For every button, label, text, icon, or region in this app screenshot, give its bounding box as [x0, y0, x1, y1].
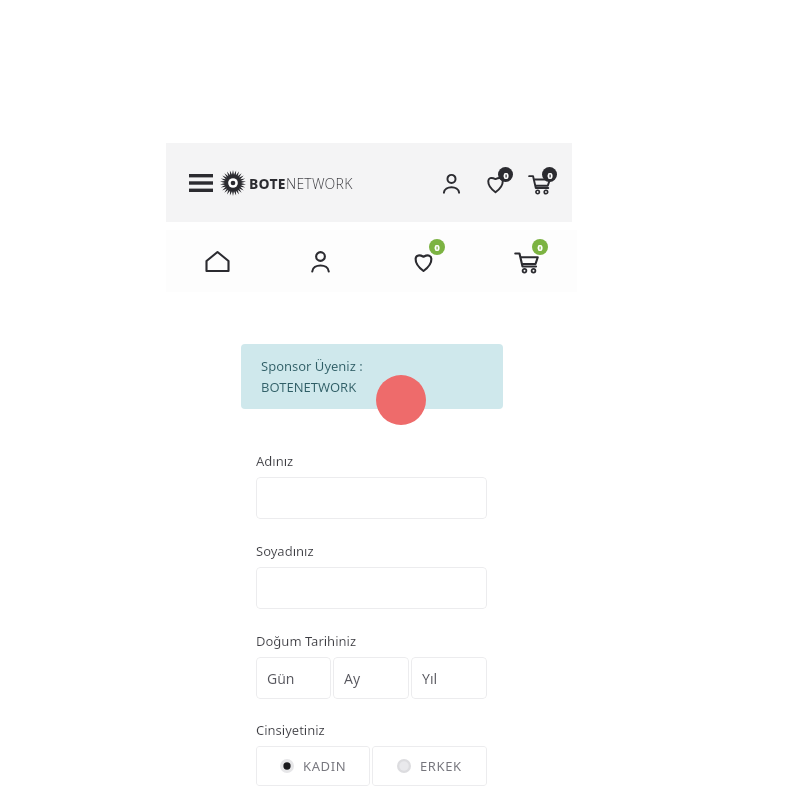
staticText: 0: [434, 241, 440, 253]
button[interactable]: Ay: [333, 657, 409, 699]
button[interactable]: Gün: [256, 657, 331, 699]
staticText: 0: [547, 169, 553, 181]
staticText: Gün: [267, 669, 295, 688]
staticText: Doğum Tarihiniz: [256, 632, 357, 650]
staticText: Cinsiyetiniz: [256, 721, 325, 739]
staticText: Ay: [344, 669, 361, 688]
staticText: BOTENETWORK: [261, 378, 357, 396]
button[interactable]: Menu: [178, 160, 224, 206]
button[interactable]: Cart: [522, 166, 556, 200]
button[interactable]: Favorites: [372, 230, 475, 292]
staticText: 0: [503, 169, 509, 181]
button[interactable]: Sponsor avatar: [376, 375, 426, 425]
staticText: NETWORK: [286, 174, 353, 193]
button[interactable]: Favorites: [478, 166, 512, 200]
button[interactable]: Profile: [269, 230, 372, 292]
button[interactable]: BOTE: [220, 170, 353, 196]
staticText: 0: [537, 241, 543, 253]
staticText: KADIN: [303, 757, 347, 775]
staticText: BOTE: [249, 174, 286, 193]
button[interactable]: [256, 477, 487, 519]
staticText: Soyadınız: [256, 542, 314, 560]
staticText: Sponsor Üyeniz :: [261, 357, 363, 375]
button[interactable]: Sponsor Üyeniz :: [241, 344, 503, 409]
button[interactable]: [256, 567, 487, 609]
staticText: ERKEK: [420, 757, 462, 775]
button[interactable]: Yıl: [411, 657, 487, 699]
staticText: Yıl: [422, 669, 438, 688]
button[interactable]: ERKEK: [372, 746, 487, 786]
button[interactable]: Home: [166, 230, 269, 292]
staticText: Adınız: [256, 452, 294, 470]
button[interactable]: Account: [434, 166, 468, 200]
button[interactable]: KADIN: [256, 746, 370, 786]
button[interactable]: Cart: [475, 230, 577, 292]
